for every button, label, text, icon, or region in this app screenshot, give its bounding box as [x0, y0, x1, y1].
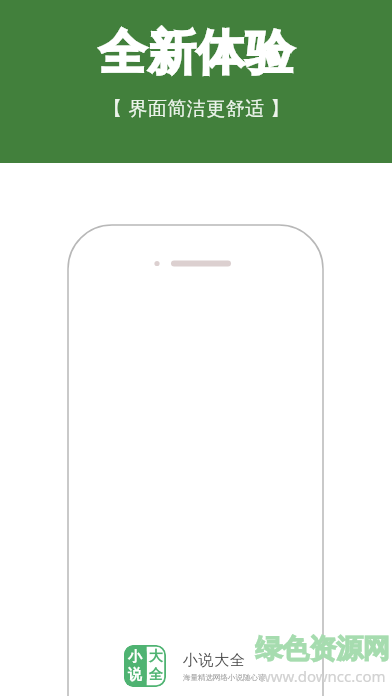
button[interactable]: 小 [124, 645, 266, 687]
staticText: 小 [128, 648, 142, 666]
staticText: 【 界面简洁更舒适 】 [103, 95, 290, 121]
other: Phone preview [0, 0, 392, 696]
button[interactable]: 全新体验 [0, 0, 392, 163]
staticText: 全 [149, 666, 163, 684]
staticText: 绿色资源网 [255, 632, 390, 666]
staticText: 小说大全 [183, 651, 246, 670]
staticText: 大 [149, 648, 163, 666]
staticText: 全新体验 [98, 23, 294, 83]
staticText: www.downcc.com [259, 666, 386, 686]
staticText: 海量精选网络小说随心读 [183, 673, 266, 682]
staticText: 说 [128, 666, 142, 684]
